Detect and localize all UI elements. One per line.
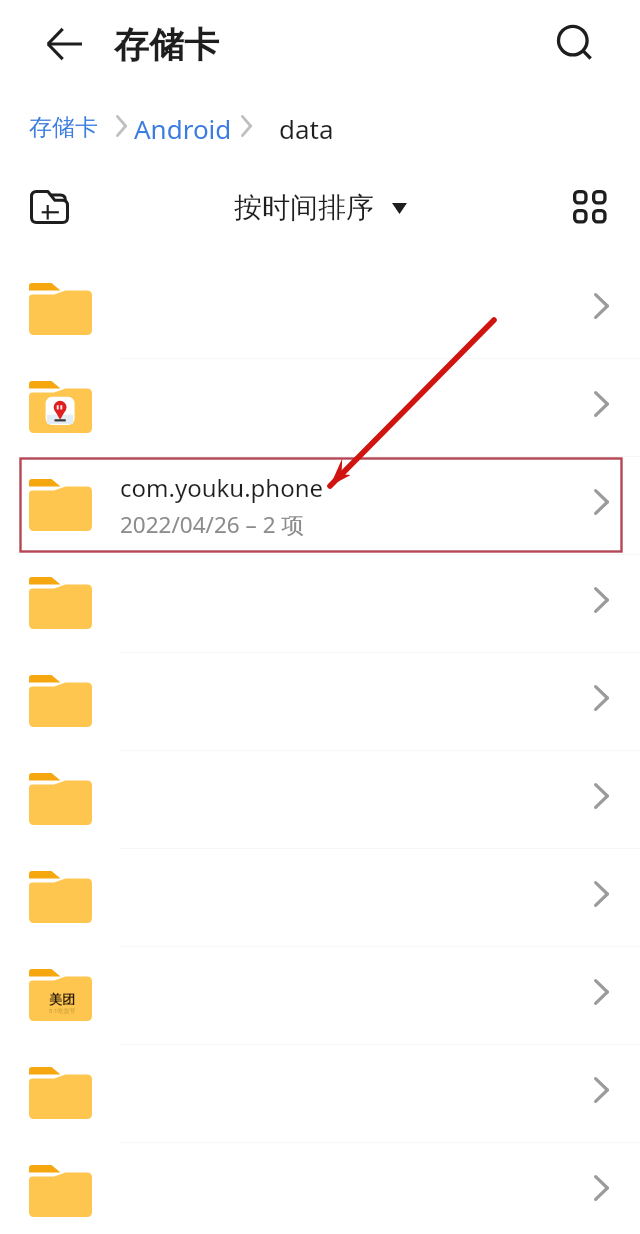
button[interactable] <box>0 751 640 849</box>
button[interactable] <box>0 1143 640 1234</box>
button[interactable] <box>0 261 640 359</box>
staticText: 按时间排序 <box>234 190 374 225</box>
button[interactable] <box>0 555 640 653</box>
button[interactable]: 按时间排序 <box>234 190 407 225</box>
button[interactable]: 存储卡 <box>29 113 98 142</box>
button[interactable]: data <box>279 111 334 146</box>
button[interactable] <box>0 653 640 751</box>
button[interactable]: com.youku.phone <box>0 457 640 555</box>
button[interactable]: 美团 <box>0 947 640 1045</box>
button[interactable]: Back <box>47 28 82 60</box>
button[interactable]: Search <box>558 26 592 59</box>
button[interactable] <box>0 1045 640 1143</box>
staticText: com.youku.phone <box>120 471 324 504</box>
staticText: 美团 <box>49 991 75 1007</box>
staticText: 2022/04/26 – 2 项 <box>120 509 304 540</box>
button[interactable] <box>0 359 640 457</box>
button[interactable] <box>0 849 640 947</box>
staticText: 存储卡 <box>114 23 219 67</box>
button[interactable]: Android <box>134 111 232 146</box>
button[interactable]: New folder <box>30 190 69 224</box>
button[interactable]: Grid view <box>573 190 607 224</box>
staticText: 5·1吃货节 <box>49 1007 76 1015</box>
